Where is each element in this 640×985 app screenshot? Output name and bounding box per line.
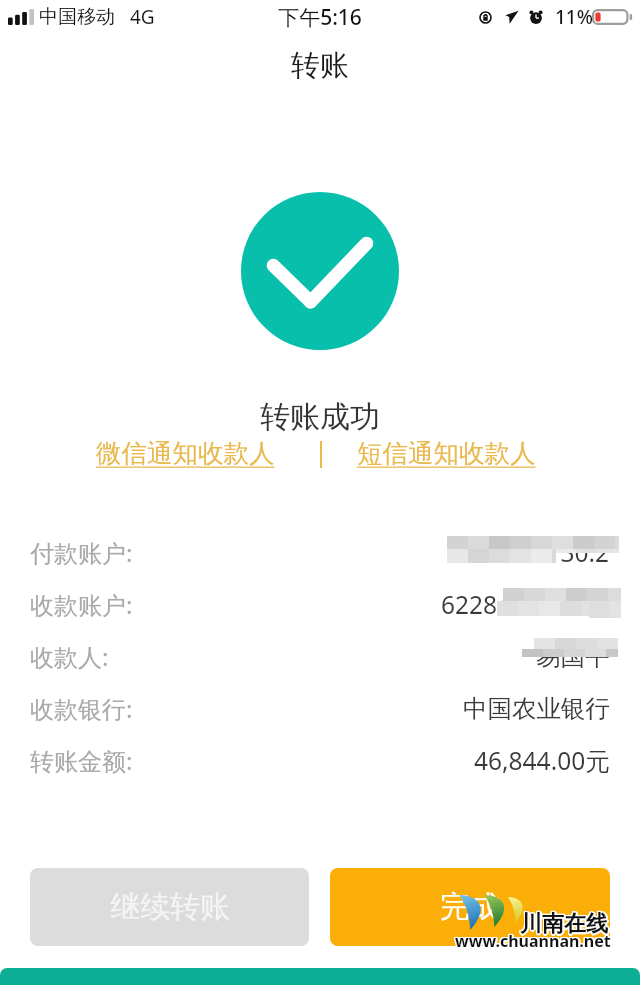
staticText: 46,844.00元 (474, 744, 610, 777)
staticText: 收款人: (30, 640, 109, 673)
staticText: www.chuannan.net (454, 931, 610, 953)
staticText: 中国移动 (39, 5, 115, 29)
staticText: 收款银行: (30, 692, 133, 725)
button[interactable]: 短信通知收款人 (357, 437, 536, 469)
staticText: www.chuannan.net (456, 931, 612, 953)
staticText: 继续转账 (110, 888, 230, 926)
staticText: 川南在线 (520, 910, 608, 938)
staticText: 川南在线 (520, 912, 608, 940)
staticText: 转账 (291, 47, 349, 84)
staticText: 4G (130, 4, 155, 30)
staticText: 11% (555, 4, 593, 30)
staticText: www.chuannan.net (457, 930, 613, 952)
staticText: 易国平 (536, 641, 610, 672)
staticText: www.chuannan.net (454, 930, 610, 952)
staticText: 川南在线 (521, 909, 609, 937)
staticText: 付款账户: (30, 536, 133, 569)
staticText: 下午5:16 (0, 3, 640, 32)
button[interactable]: 继续转账 (30, 868, 309, 946)
button[interactable]: 微信通知收款人 (96, 437, 275, 469)
staticText: 中国农业银行 (463, 693, 610, 724)
staticText: 川南在线 (522, 910, 610, 938)
button[interactable]: 微信通知收款人 (96, 437, 275, 471)
staticText: 川南在线 (519, 909, 607, 937)
staticText: 川南在线 (521, 911, 609, 939)
button[interactable]: 短信通知收款人 (357, 437, 536, 471)
staticText: www.chuannan.net (456, 929, 612, 951)
staticText: www.chuannan.net (454, 929, 610, 951)
staticText: 川南在线 (519, 910, 607, 938)
staticText: 川南在线 (519, 911, 607, 939)
staticText: 148300 30.2 (470, 536, 610, 569)
staticText: 转账金额: (30, 744, 133, 777)
staticText: 622848073278 (441, 588, 610, 621)
staticText: www.chuannan.net (455, 932, 611, 954)
staticText: 完成 (440, 888, 500, 926)
staticText: www.chuannan.net (455, 930, 611, 952)
staticText: www.chuannan.net (455, 929, 611, 951)
staticText: 转账成功 (0, 398, 640, 436)
button[interactable]: 完成 (330, 868, 610, 946)
staticText: 收款账户: (30, 588, 133, 621)
staticText: 川南在线 (520, 909, 608, 937)
